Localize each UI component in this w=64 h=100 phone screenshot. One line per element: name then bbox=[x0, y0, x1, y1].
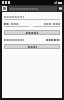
button[interactable] bbox=[4, 23, 31, 27]
button[interactable] bbox=[9, 6, 57, 11]
button[interactable] bbox=[4, 38, 60, 42]
button[interactable] bbox=[33, 23, 60, 27]
button[interactable]: Open app menu bbox=[2, 6, 7, 11]
button[interactable] bbox=[2, 14, 62, 20]
button[interactable] bbox=[4, 44, 60, 49]
button[interactable]: More options bbox=[58, 6, 62, 11]
button[interactable] bbox=[4, 30, 60, 35]
